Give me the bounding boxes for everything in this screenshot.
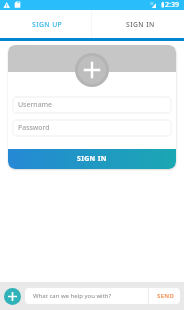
staticText: SIGN IN [126, 20, 155, 29]
staticText: SEND [157, 292, 175, 300]
staticText: Username [18, 100, 53, 110]
staticText: SIGN IN [77, 154, 107, 164]
staticText: Password [18, 123, 50, 133]
button[interactable]: What can we help you with? [25, 288, 148, 304]
button[interactable]: SIGN IN [96, 10, 184, 38]
button[interactable]: Add profile photo [75, 53, 109, 87]
button[interactable]: Password [13, 120, 171, 136]
button[interactable]: SIGN IN [8, 149, 176, 169]
button[interactable]: Add [4, 288, 21, 305]
staticText: SIGN UP [32, 20, 63, 29]
staticText: 2:39 [165, 0, 179, 10]
button[interactable]: SEND [149, 288, 180, 304]
staticText: What can we help you with? [33, 292, 112, 300]
button[interactable]: Username [13, 97, 171, 113]
button[interactable]: SIGN UP [4, 10, 91, 38]
